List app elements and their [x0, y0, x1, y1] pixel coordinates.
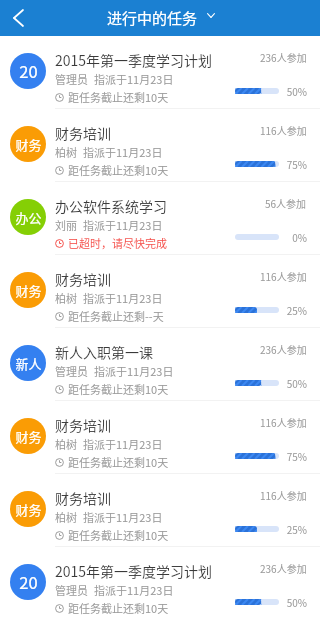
staticText: 管理员 [55, 582, 88, 598]
staticText: 财务培训 [55, 269, 111, 289]
staticText: 25% [283, 303, 307, 317]
staticText: 236人参加 [260, 561, 307, 575]
staticText: 距任务截止还剩10天 [68, 527, 169, 543]
staticText: 指派于11月23日 [94, 71, 174, 87]
staticText: 116人参加 [260, 488, 307, 502]
staticText: 0% [283, 230, 307, 244]
staticText: 新人 [15, 354, 42, 373]
button[interactable]: 20 [0, 36, 320, 108]
staticText: 财务培训 [55, 488, 111, 508]
staticText: 办公 [15, 208, 42, 227]
staticText: 距任务截止还剩10天 [68, 454, 169, 470]
button[interactable]: 20 [0, 547, 320, 619]
staticText: 管理员 [55, 71, 88, 87]
staticText: 指派于11月23日 [83, 436, 163, 452]
button[interactable]: 财务 [0, 109, 320, 181]
staticText: 75% [283, 157, 307, 171]
staticText: 距任务截止还剩10天 [68, 381, 169, 397]
staticText: 指派于11月23日 [83, 217, 163, 233]
staticText: 指派于11月23日 [94, 363, 174, 379]
staticText: 财务 [15, 135, 42, 154]
staticText: 柏树 [55, 509, 77, 525]
staticText: 财务 [15, 500, 42, 519]
staticText: 116人参加 [260, 415, 307, 429]
button[interactable]: Back [0, 0, 36, 36]
staticText: 25% [283, 522, 307, 536]
staticText: 2015年第一季度学习计划 [55, 561, 213, 581]
staticText: 距任务截止还剩10天 [68, 89, 169, 105]
staticText: 116人参加 [260, 269, 307, 283]
staticText: 距任务截止还剩--天 [68, 308, 164, 324]
staticText: 236人参加 [260, 342, 307, 356]
staticText: 财务培训 [55, 415, 111, 435]
staticText: 距任务截止还剩10天 [68, 600, 169, 616]
staticText: 距任务截止还剩10天 [68, 162, 169, 178]
staticText: 柏树 [55, 290, 77, 306]
staticText: 财务培训 [55, 123, 111, 143]
staticText: 刘丽 [55, 217, 77, 233]
staticText: 56人参加 [265, 196, 307, 210]
staticText: 236人参加 [260, 50, 307, 64]
staticText: 新人入职第一课 [55, 342, 153, 362]
button[interactable]: 财务 [0, 255, 320, 327]
staticText: 2015年第一季度学习计划 [55, 50, 213, 70]
button[interactable]: 财务 [0, 401, 320, 473]
button[interactable]: 新人 [0, 328, 320, 400]
staticText: 指派于11月23日 [94, 582, 174, 598]
button[interactable]: 办公 [0, 182, 320, 254]
staticText: 柏树 [55, 436, 77, 452]
staticText: 指派于11月23日 [83, 509, 163, 525]
button[interactable]: 财务 [0, 474, 320, 546]
staticText: 20 [19, 59, 38, 83]
staticText: 指派于11月23日 [83, 290, 163, 306]
staticText: 财务 [15, 281, 42, 300]
staticText: 办公软件系统学习 [55, 196, 167, 216]
staticText: 指派于11月23日 [83, 144, 163, 160]
staticText: 已超时，请尽快完成 [68, 235, 167, 251]
staticText: 50% [283, 84, 307, 98]
staticText: 116人参加 [260, 123, 307, 137]
button[interactable]: 进行中的任务 [107, 7, 215, 29]
staticText: 50% [283, 595, 307, 609]
staticText: 财务 [15, 427, 42, 446]
staticText: 50% [283, 376, 307, 390]
staticText: 柏树 [55, 144, 77, 160]
staticText: 管理员 [55, 363, 88, 379]
staticText: 20 [19, 570, 38, 594]
staticText: 进行中的任务 [107, 7, 198, 29]
staticText: 75% [283, 449, 307, 463]
